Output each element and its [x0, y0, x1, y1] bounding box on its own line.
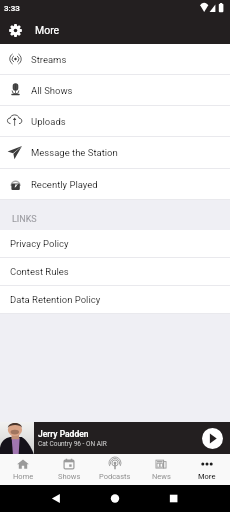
button[interactable]: Contest Rules: [0, 258, 230, 286]
staticText: News: [152, 472, 171, 481]
staticText: Recently Played: [31, 179, 98, 190]
button[interactable]: Streams: [0, 44, 230, 75]
button[interactable]: Home: [0, 454, 46, 485]
staticText: Shows: [58, 472, 81, 481]
button[interactable]: Data Retention Policy: [0, 286, 230, 314]
staticText: Podcasts: [99, 472, 131, 481]
staticText: Jerry Padden: [38, 429, 89, 439]
button[interactable]: Recently Played: [0, 169, 230, 200]
button[interactable]: Settings: [0, 16, 31, 44]
button[interactable]: Podcasts: [92, 454, 138, 485]
staticText: Data Retention Policy: [10, 294, 101, 305]
staticText: Cat Country 96 - ON AIR: [38, 440, 107, 448]
staticText: Streams: [31, 54, 67, 65]
button[interactable]: News: [138, 454, 184, 485]
staticText: More: [35, 24, 60, 36]
button[interactable]: All Shows: [0, 75, 230, 106]
staticText: Home: [13, 472, 34, 481]
staticText: 3:33: [4, 4, 20, 13]
button[interactable]: Privacy Policy: [0, 230, 230, 258]
staticText: More: [198, 472, 216, 481]
button[interactable]: Shows: [46, 454, 92, 485]
button[interactable]: More: [184, 454, 230, 485]
staticText: Contest Rules: [10, 266, 69, 277]
staticText: Uploads: [31, 116, 66, 127]
button[interactable]: Uploads: [0, 106, 230, 137]
staticText: Privacy Policy: [10, 238, 69, 249]
button[interactable]: Message the Station: [0, 137, 230, 169]
staticText: All Shows: [31, 85, 73, 96]
button[interactable]: Play: [202, 428, 223, 449]
staticText: LINKS: [12, 214, 37, 225]
staticText: Message the Station: [31, 147, 118, 158]
